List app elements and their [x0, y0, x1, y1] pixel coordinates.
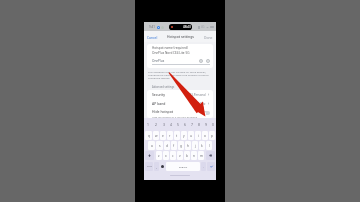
staticText: 7	[191, 122, 193, 127]
staticText: 2	[155, 122, 157, 127]
button[interactable]: o	[202, 131, 208, 140]
staticText: Hide hotspot	[152, 109, 173, 114]
button[interactable]: e	[160, 131, 166, 140]
button[interactable]: Security	[147, 90, 213, 99]
staticText: v	[179, 154, 181, 158]
staticText: g	[180, 144, 182, 148]
button[interactable]: Hide hotspot	[147, 108, 213, 118]
button[interactable]: n	[191, 151, 197, 160]
staticText: WPA3-Personal	[185, 93, 206, 97]
button[interactable]: f	[171, 141, 177, 150]
button[interactable]: Show password	[206, 59, 210, 63]
button[interactable]: AP band	[147, 99, 213, 108]
button[interactable]: 3	[160, 120, 167, 128]
button[interactable]: x	[163, 151, 169, 160]
button[interactable]: 9	[202, 120, 209, 128]
staticText: z	[158, 154, 160, 158]
staticText: 4G	[201, 25, 205, 29]
staticText: AP band	[152, 101, 166, 106]
staticText: k	[201, 144, 203, 148]
button[interactable]: k	[199, 141, 205, 150]
staticText: Security	[152, 92, 166, 97]
button[interactable]: y	[181, 131, 187, 140]
staticText: l	[209, 144, 210, 148]
button[interactable]: u	[188, 131, 194, 140]
staticText: n	[193, 154, 195, 158]
button[interactable]: g	[178, 141, 184, 150]
button[interactable]: 8	[195, 120, 202, 128]
button[interactable]: Clear text	[199, 59, 203, 63]
staticText: h	[187, 144, 189, 148]
staticText: t	[176, 134, 178, 138]
button[interactable]: ,	[154, 162, 159, 171]
staticText: ,	[156, 165, 157, 169]
staticText: 48:43	[183, 25, 191, 29]
button[interactable]: 7	[188, 120, 195, 128]
button[interactable]: w	[153, 131, 159, 140]
staticText: m	[200, 154, 203, 158]
staticText: f	[173, 144, 175, 148]
staticText: This operation may not succeed on some d…	[148, 70, 207, 73]
button[interactable]: d	[164, 141, 170, 150]
staticText: r	[169, 134, 171, 138]
staticText: Hide the hotspot so it can only be joine…	[152, 115, 198, 118]
button[interactable]: c	[170, 151, 176, 160]
staticText: Hotspot settings	[167, 34, 194, 39]
staticText: Hotspot name (required)	[152, 46, 188, 50]
staticText: e	[162, 134, 164, 138]
staticText: 4	[170, 122, 172, 127]
staticText: English	[179, 165, 188, 168]
staticText: i	[198, 134, 199, 138]
staticText: u	[190, 134, 192, 138]
staticText: 1	[147, 122, 149, 127]
staticText: Advanced settings	[152, 85, 175, 89]
button[interactable]: i	[195, 131, 201, 140]
button[interactable]: 0	[209, 120, 216, 128]
button[interactable]: b	[184, 151, 190, 160]
staticText: d	[166, 144, 168, 148]
button[interactable]: Shift	[145, 151, 154, 160]
button[interactable]: English	[166, 162, 200, 171]
button[interactable]: 2	[152, 120, 160, 128]
button[interactable]: t	[174, 131, 180, 140]
staticText: .	[203, 165, 204, 169]
button[interactable]: ?123	[145, 162, 153, 171]
button[interactable]: r	[167, 131, 173, 140]
staticText: OnePlus Nord CE4 Lite 5G	[152, 51, 190, 55]
button[interactable]: h	[185, 141, 191, 150]
button[interactable]: 6	[181, 120, 188, 128]
button[interactable]: 4	[167, 120, 174, 128]
button[interactable]: j	[192, 141, 198, 150]
staticText: 6	[184, 122, 186, 127]
staticText: q	[148, 134, 150, 138]
button[interactable]: a	[148, 141, 155, 150]
staticText: j	[195, 144, 196, 148]
staticText: 9	[205, 122, 207, 127]
button[interactable]: Enter	[207, 162, 215, 171]
staticText: 2.4 GHz	[195, 102, 206, 106]
button[interactable]: Done	[203, 34, 216, 40]
staticText: 0	[212, 122, 214, 127]
staticText: 3	[163, 122, 165, 127]
button[interactable]: 5	[174, 120, 181, 128]
staticText: b	[186, 154, 188, 158]
staticText: a	[151, 144, 153, 148]
button[interactable]: l	[206, 141, 212, 150]
button[interactable]: q	[145, 131, 152, 140]
button[interactable]: Emoji	[160, 162, 165, 171]
button[interactable]: s	[156, 141, 163, 150]
staticText: s	[159, 144, 161, 148]
staticText: 5	[177, 122, 179, 127]
button[interactable]: Cancel	[144, 34, 159, 40]
staticText: OnePlus	[152, 59, 165, 63]
staticText: c	[172, 154, 174, 158]
button[interactable]: v	[177, 151, 183, 160]
staticText: 9:41	[149, 25, 155, 29]
button[interactable]: 1	[144, 120, 152, 128]
staticText: x	[165, 154, 167, 158]
button[interactable]: z	[156, 151, 162, 160]
button[interactable]: Backspace	[206, 151, 215, 160]
button[interactable]: m	[198, 151, 204, 160]
button[interactable]: p	[209, 131, 215, 140]
